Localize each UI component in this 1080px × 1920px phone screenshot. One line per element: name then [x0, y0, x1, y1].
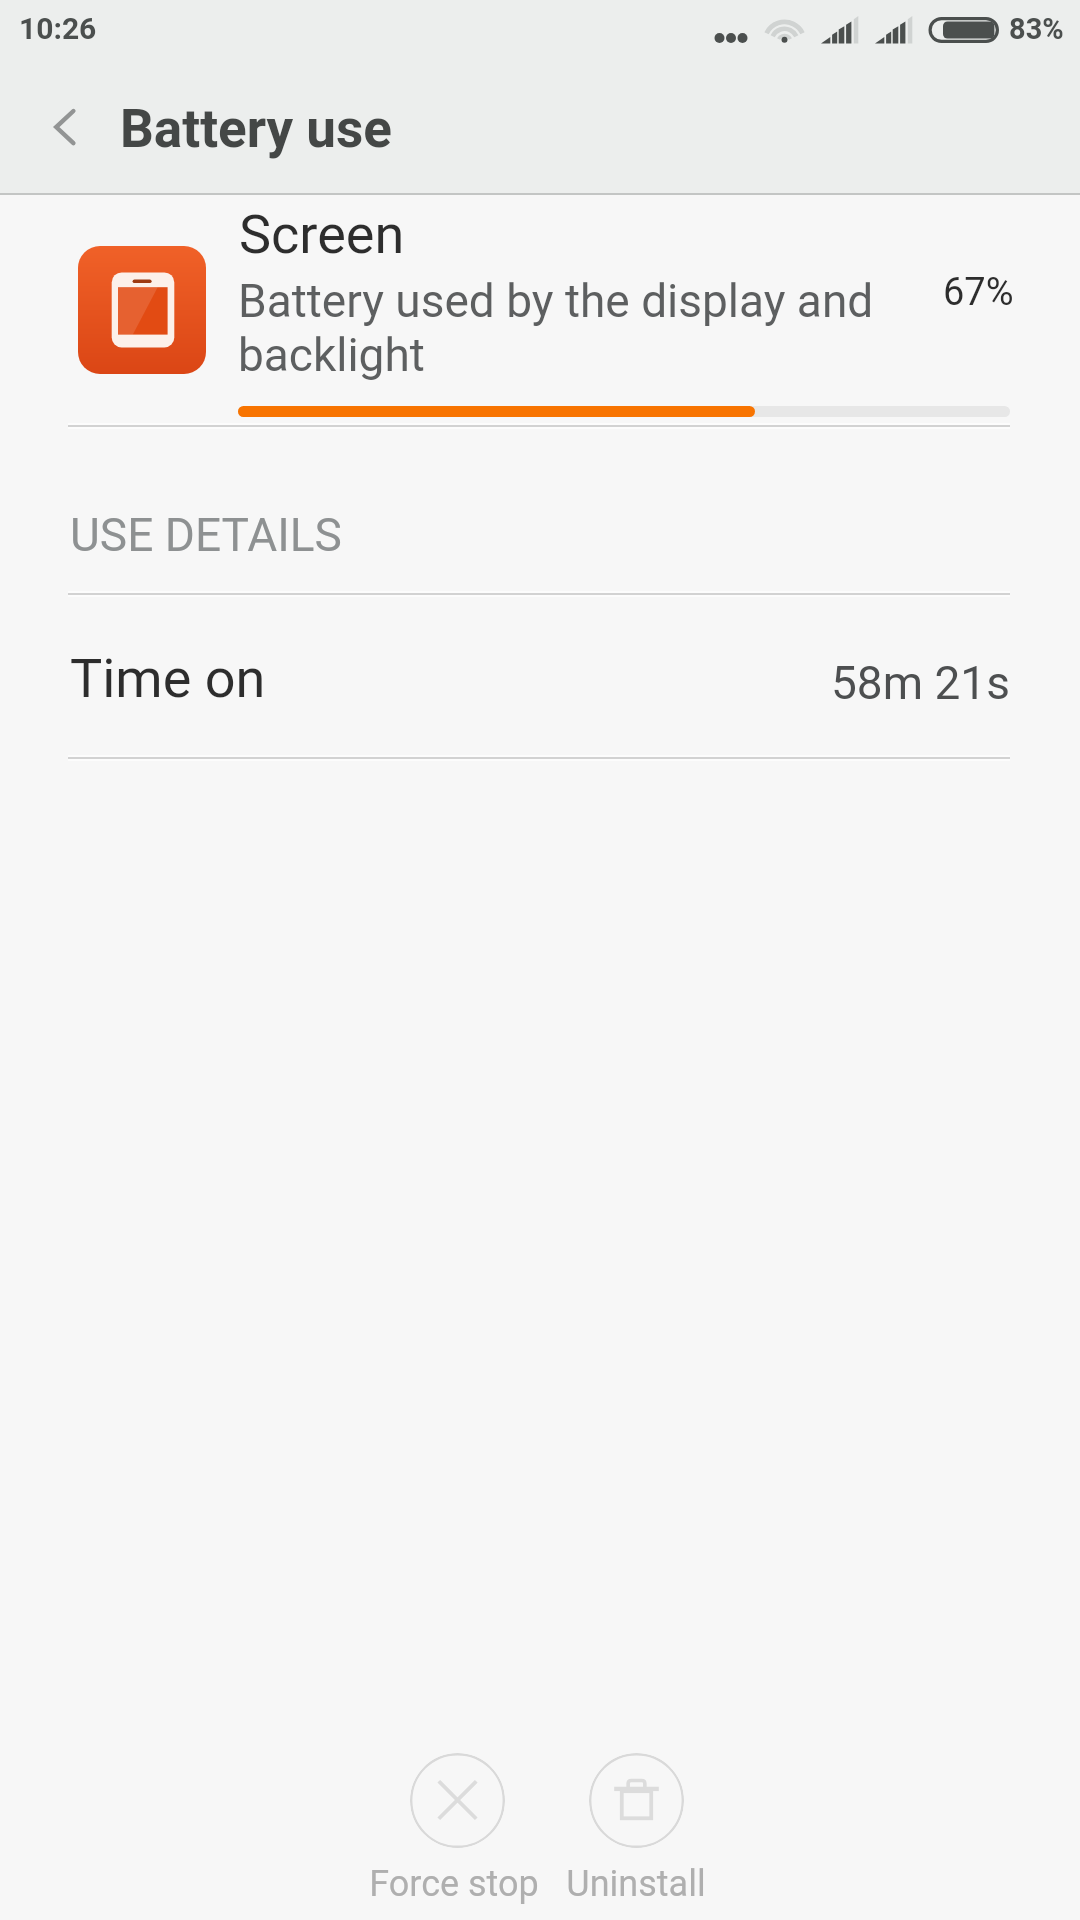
staticText: Uninstall [566, 1863, 706, 1905]
staticText: 67% [943, 270, 1014, 315]
button[interactable]: Back [18, 79, 114, 175]
staticText: USE DETAILS [70, 508, 342, 562]
button[interactable]: Screen [0, 195, 1080, 425]
staticText: Time on [70, 647, 266, 710]
button[interactable]: Time on [0, 595, 1080, 757]
staticText: 58m 21s [831, 656, 1010, 710]
button[interactable]: Uninstall [589, 1753, 684, 1848]
staticText: 83% [1009, 12, 1064, 46]
staticText: Force stop [369, 1863, 539, 1905]
staticText: Battery used by the display and backligh… [238, 274, 874, 382]
staticText: Screen [239, 203, 405, 266]
staticText: 10:26 [19, 11, 97, 46]
staticText: Battery use [120, 98, 392, 160]
button[interactable]: Force stop [410, 1753, 505, 1848]
